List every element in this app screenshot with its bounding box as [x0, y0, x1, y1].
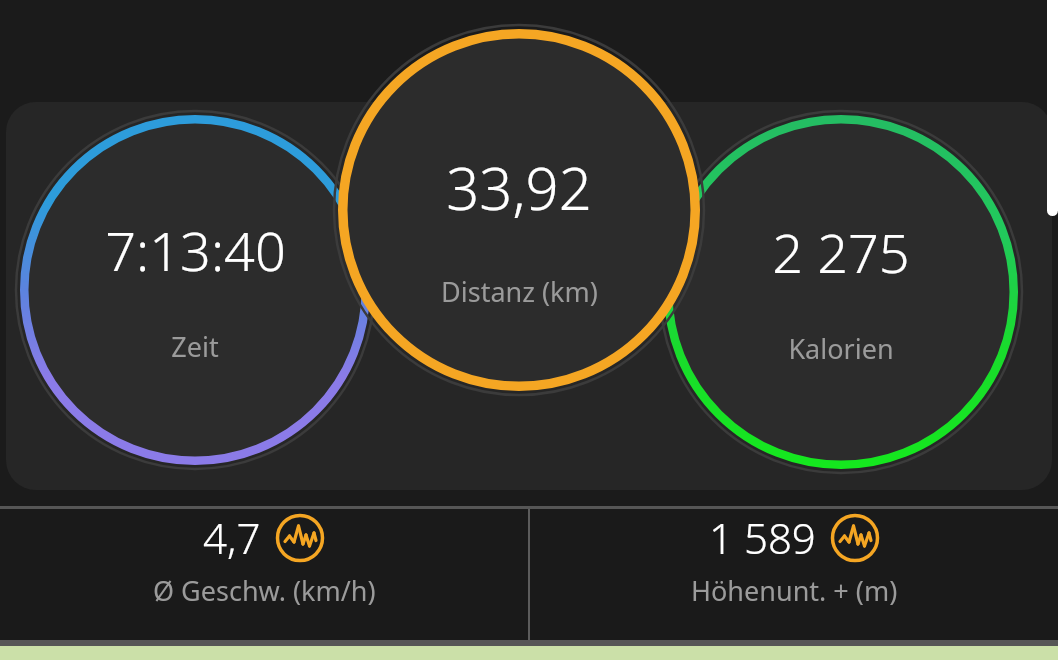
- button[interactable]: Zeit 7:13:40: [20, 115, 370, 465]
- button[interactable]: Kalorien 2 275: [664, 115, 1018, 469]
- staticText: Ø Geschw. (km/h): [153, 572, 376, 609]
- staticText: 4,7: [203, 509, 261, 566]
- staticText: Kalorien: [788, 330, 894, 367]
- button[interactable]: 4,7: [0, 509, 528, 609]
- staticText: 33,92: [446, 148, 592, 227]
- staticText: 1 589: [709, 509, 816, 566]
- staticText: 7:13:40: [105, 213, 286, 287]
- staticText: Distanz (km): [441, 273, 598, 310]
- button[interactable]: 1 589: [530, 509, 1058, 609]
- staticText: Zeit: [171, 328, 219, 365]
- staticText: Höhenunt. + (m): [691, 572, 898, 609]
- staticText: 2 275: [772, 215, 910, 289]
- button[interactable]: Distanz 33,92 km: [338, 29, 700, 391]
